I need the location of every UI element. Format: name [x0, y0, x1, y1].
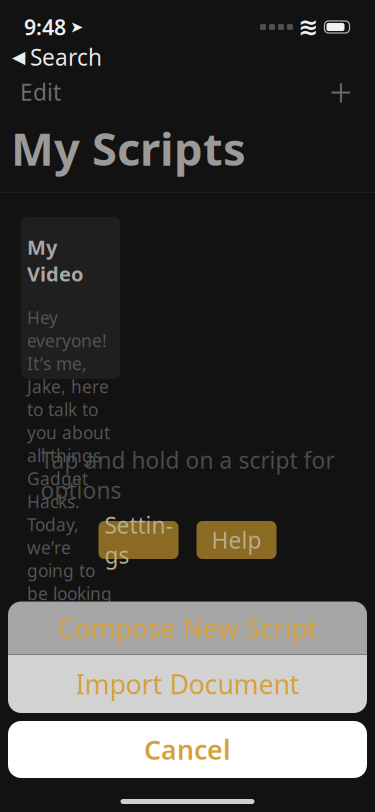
staticText: My Video: [27, 234, 84, 287]
staticText: 9:48: [24, 13, 66, 41]
staticText: Compose New Script: [57, 610, 317, 646]
button[interactable]: Import Document: [8, 655, 367, 713]
button[interactable]: ◀: [6, 40, 108, 74]
button[interactable]: Cancel: [8, 721, 367, 778]
staticText: Hey everyone! It’s me, Jake, here to tal…: [27, 306, 112, 628]
button[interactable]: My Video: [21, 217, 120, 379]
button[interactable]: Edit: [16, 71, 65, 113]
staticText: My Scripts: [11, 118, 246, 178]
staticText: Settings: [104, 510, 172, 570]
button[interactable]: Compose New Script: [8, 601, 367, 654]
staticText: Tap and hold on a script for options: [40, 445, 334, 505]
button[interactable]: Help: [196, 521, 276, 559]
staticText: ➤: [70, 18, 83, 36]
staticText: Cancel: [144, 732, 231, 767]
staticText: Search: [30, 42, 102, 72]
staticText: Edit: [20, 77, 61, 107]
staticText: Import Document: [75, 666, 299, 702]
staticText: Help: [211, 525, 261, 555]
staticText: ≋: [298, 13, 318, 41]
staticText: ◀: [12, 47, 25, 67]
button[interactable]: Settings: [98, 521, 178, 559]
button[interactable]: New Script: [323, 74, 359, 110]
staticText: +: [329, 65, 352, 118]
